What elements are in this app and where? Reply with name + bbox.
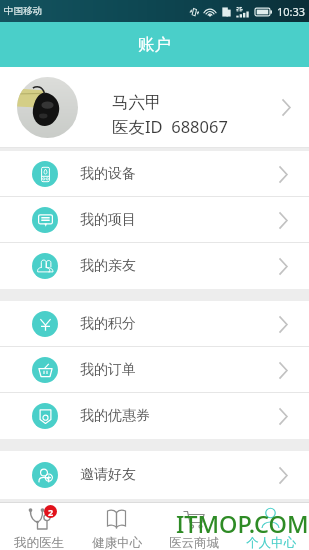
button[interactable]: 邀请好友 <box>0 451 309 499</box>
other: Open <box>279 363 288 378</box>
other: Open <box>279 259 288 274</box>
staticText: ITMOP.COM <box>176 508 309 540</box>
staticText: 我的设备 <box>80 165 136 183</box>
button[interactable]: 我的订单 <box>0 347 309 393</box>
staticText: 个人中心 <box>246 535 296 550</box>
other: Open <box>282 100 291 115</box>
staticText: 2 <box>48 506 54 518</box>
button[interactable]: 我的项目 <box>0 197 309 243</box>
staticText: 健康中心 <box>92 535 142 550</box>
button[interactable]: 我的亲友 <box>0 243 309 289</box>
button[interactable]: 我的优惠券 <box>0 393 309 439</box>
button[interactable]: 我的设备 <box>0 151 309 197</box>
staticText: 我的订单 <box>80 361 136 379</box>
staticText: 医云商城 <box>169 535 219 550</box>
button[interactable]: 医云商城 <box>155 503 232 550</box>
button[interactable]: 我的积分 <box>0 301 309 347</box>
staticText: 10:33 <box>277 4 306 19</box>
button[interactable]: 个人中心 <box>232 503 309 550</box>
staticText: 我的积分 <box>80 315 136 333</box>
staticText: 我的优惠券 <box>80 407 150 425</box>
other: Open <box>279 468 288 483</box>
button[interactable]: 马六甲 <box>0 67 309 148</box>
staticText: 邀请好友 <box>80 466 136 484</box>
other: Open <box>279 317 288 332</box>
staticText: 我的医生 <box>14 535 64 550</box>
other: Open <box>279 167 288 182</box>
staticText: 医友ID 688067 <box>112 115 228 138</box>
button[interactable]: 健康中心 <box>78 503 155 550</box>
staticText: 中国移动 <box>4 5 42 17</box>
staticText: 账户 <box>138 34 171 55</box>
staticText: 我的亲友 <box>80 257 136 275</box>
staticText: 马六甲 <box>112 92 162 113</box>
staticText: 我的项目 <box>80 211 136 229</box>
other: Open <box>279 409 288 424</box>
button[interactable]: 2 <box>0 503 78 550</box>
other: Open <box>279 213 288 228</box>
